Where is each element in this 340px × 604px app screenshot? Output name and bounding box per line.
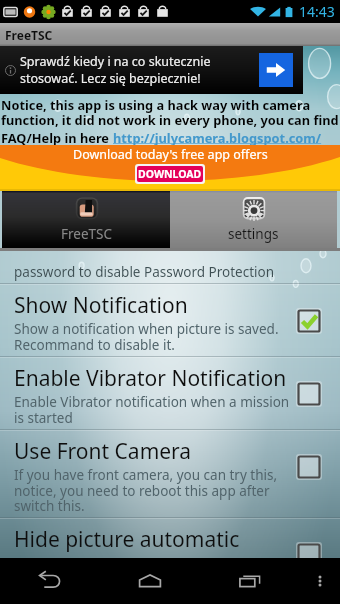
staticText: Download today's free app offers	[73, 146, 268, 163]
staticText: Show a notification when picture is save…	[14, 320, 279, 354]
staticText: Hide picture automatic	[14, 525, 240, 554]
button[interactable]: password to disable Password Protection	[0, 251, 340, 283]
button[interactable]: DOWNLOAD	[137, 166, 203, 182]
button[interactable]: Download today's free app offers	[0, 145, 340, 191]
staticText: password to disable Password Protection	[14, 263, 275, 281]
staticText: Enable Vibrator Notification	[14, 364, 287, 393]
staticText: Use Front Camera	[14, 437, 192, 466]
button[interactable]: Home	[100, 558, 200, 604]
staticText: FreeTSC	[5, 27, 53, 43]
button[interactable]: Back	[0, 558, 100, 604]
button[interactable]: FreeTSC	[2, 191, 170, 248]
staticText: stosować. Lecz się bezpiecznie!	[20, 70, 201, 87]
staticText: FreeTSC	[61, 225, 112, 243]
button[interactable]: Enable Vibrator Notification	[0, 358, 340, 429]
button[interactable]: Open ad	[259, 53, 293, 87]
button[interactable]: settings	[170, 191, 337, 248]
button[interactable]: Hide picture automatic	[0, 519, 340, 568]
button[interactable]: http://julycamera.blogspot.com/	[113, 129, 322, 145]
staticText: If you have front camera, you can try th…	[14, 466, 278, 515]
staticText: Sprawdź kiedy i na co skutecznie	[20, 53, 211, 70]
staticText: FAQ/Help in here	[1, 129, 113, 145]
button[interactable]: Sprawdź kiedy i na co skutecznie	[0, 46, 303, 94]
button[interactable]: Recent apps	[200, 558, 300, 604]
button[interactable]: Show Notification	[0, 285, 340, 356]
staticText: DOWNLOAD	[138, 167, 202, 181]
staticText: 14:43	[299, 2, 335, 21]
staticText: Notice, this app is using a hack way wit…	[1, 96, 339, 129]
staticText: Enable Vibrator notification when a miss…	[14, 393, 290, 427]
button[interactable]: More options	[300, 558, 340, 604]
staticText: Show Notification	[14, 291, 188, 320]
staticText: settings	[228, 225, 279, 243]
button[interactable]: Use Front Camera	[0, 431, 340, 517]
